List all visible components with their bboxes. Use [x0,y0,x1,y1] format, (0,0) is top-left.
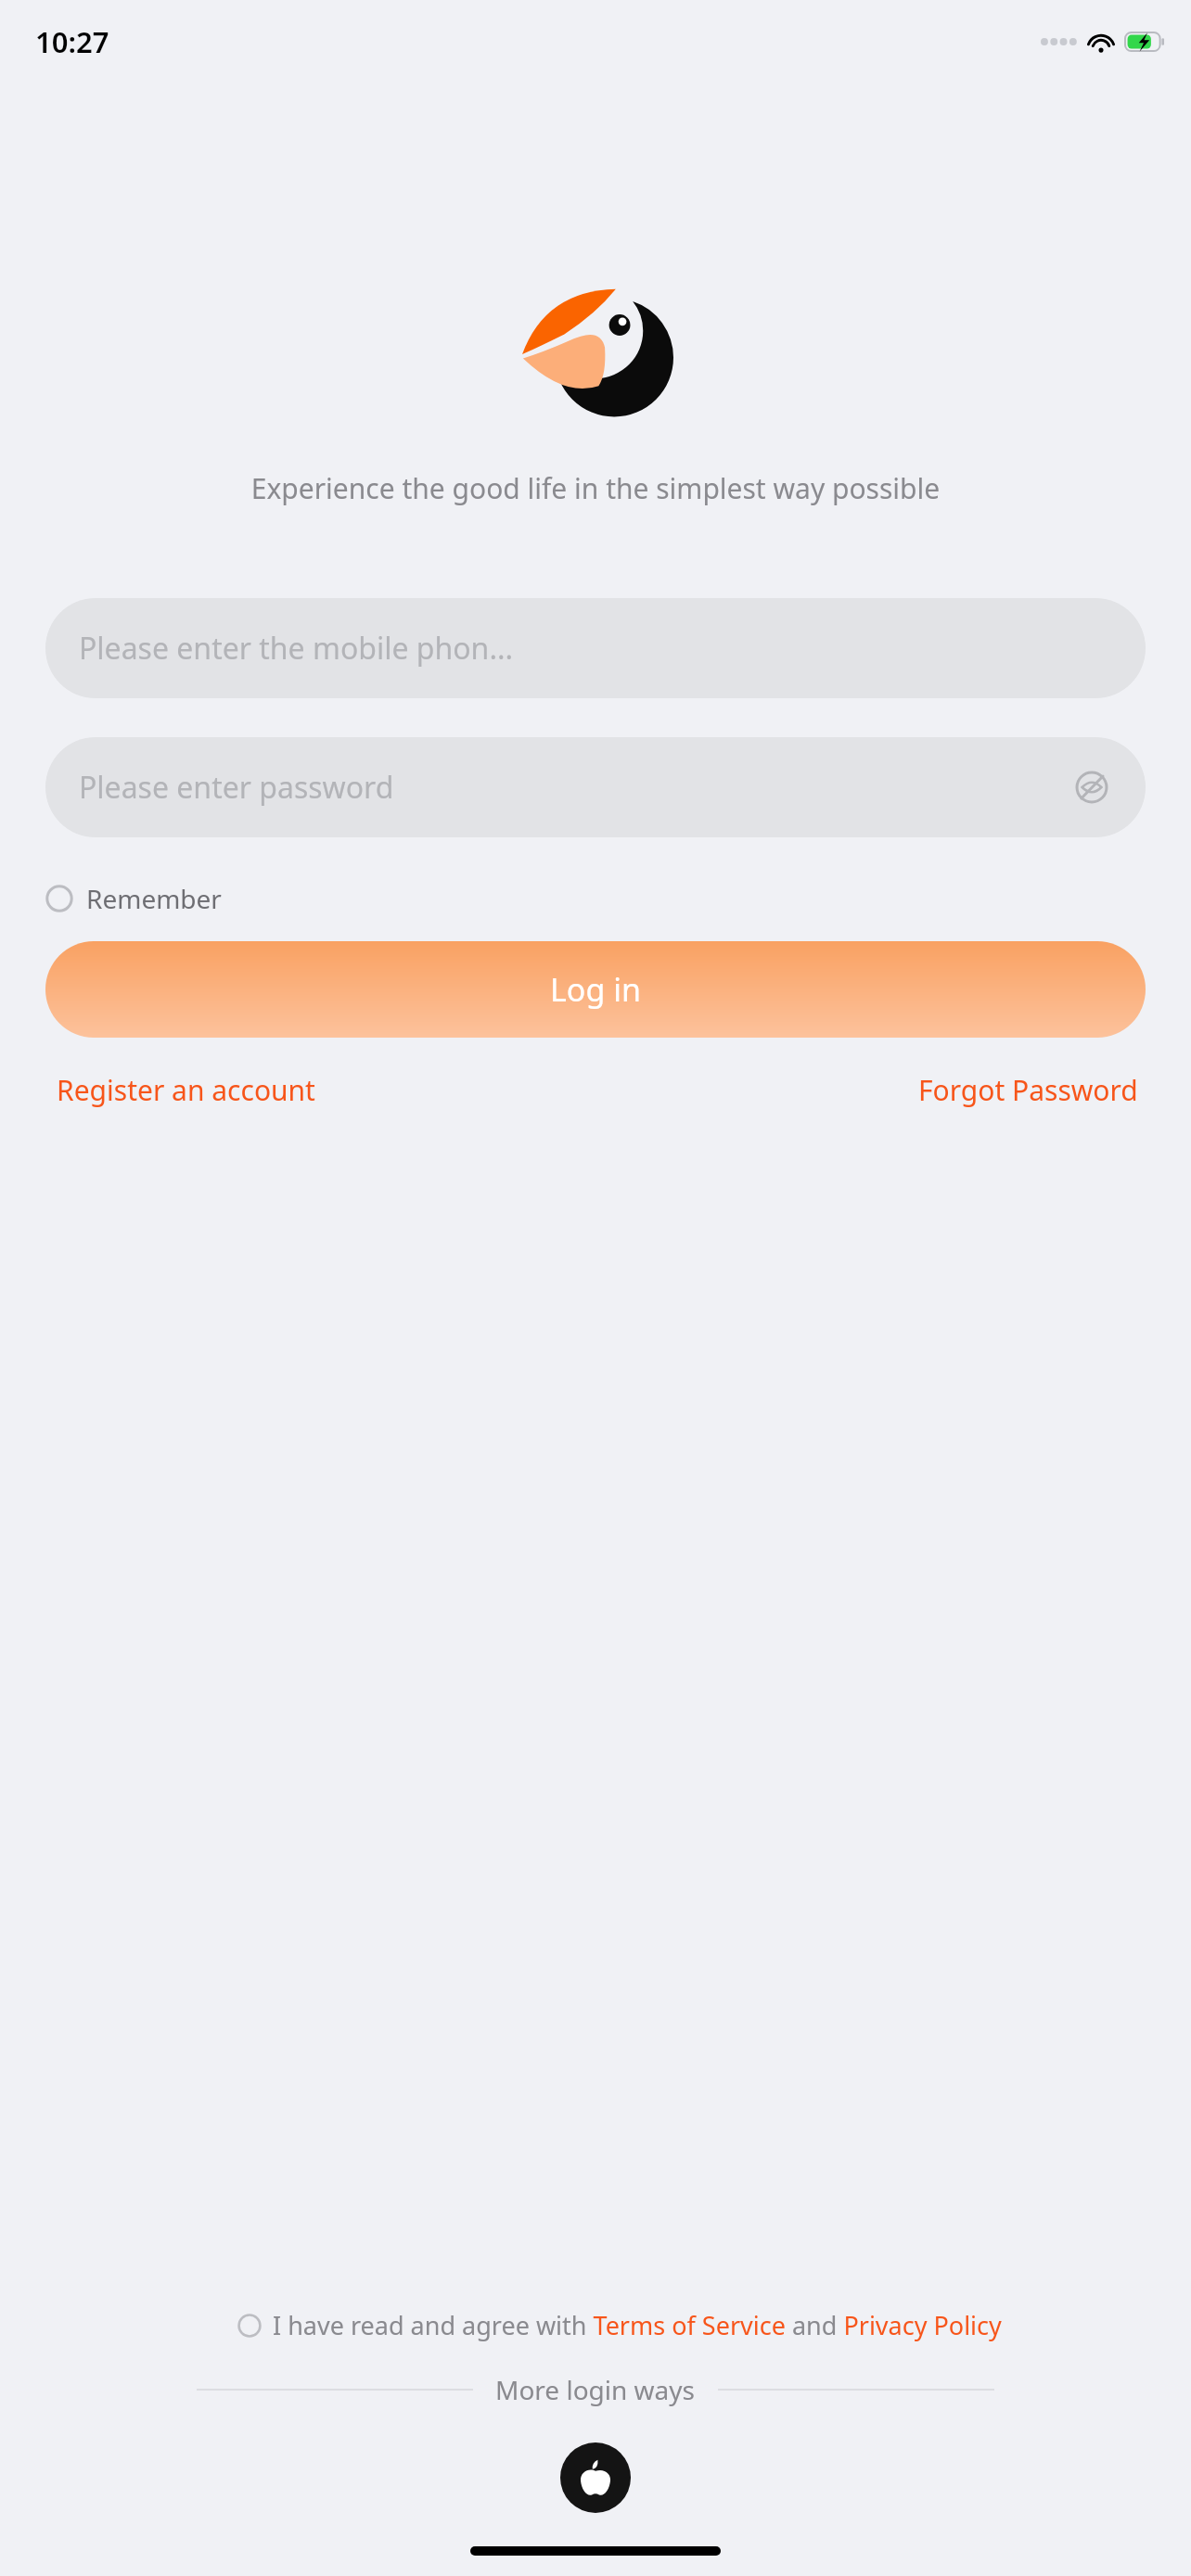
staticText: Experience the good life in the simplest… [0,469,1191,507]
button[interactable]: I have read and agree with Terms of Serv… [237,2308,1002,2342]
button[interactable]: Please enter the mobile phon... [45,598,1146,698]
staticText: More login ways [495,2372,696,2407]
staticText: Forgot Password [918,1071,1138,1109]
button[interactable]: Log in [45,941,1146,1038]
staticText: 10:27 [35,22,109,61]
staticText: Log in [550,968,641,1011]
staticText: Register an account [57,1071,315,1109]
button[interactable]: Sign in with Apple [560,2442,631,2513]
staticText: I have read and agree with Terms of Serv… [273,2308,1002,2342]
button[interactable]: Show password [1066,761,1118,813]
staticText: Please enter the mobile phon... [79,628,514,669]
button[interactable]: Please enter password [45,737,1146,837]
staticText: Please enter password [79,767,394,808]
button[interactable]: Forgot Password [918,1071,1138,1109]
button[interactable]: Register an account [57,1071,315,1109]
button[interactable]: Remember [45,873,222,925]
staticText: Remember [86,881,222,916]
